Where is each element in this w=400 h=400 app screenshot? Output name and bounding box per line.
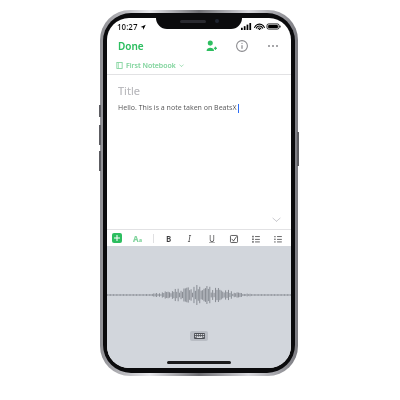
button[interactable]: Hello. This is a note taken on BeatsX [118,103,237,113]
button[interactable]: Show keyboard [190,331,208,341]
button[interactable]: Bulleted list [271,232,284,245]
staticText: U [209,233,215,244]
button[interactable]: Bold [162,232,175,245]
button[interactable]: Share note [202,37,220,55]
staticText: 10:27 [117,21,138,32]
button[interactable]: More options [264,37,282,55]
staticText: B [166,233,172,244]
button[interactable]: Underline [205,232,218,245]
staticText: Done [118,39,144,53]
button[interactable]: Title [118,83,140,98]
button[interactable]: Checklist [227,232,240,245]
button[interactable]: Insert [112,233,122,243]
staticText: A [133,233,139,244]
staticText: I [188,233,191,244]
button[interactable]: First Notebook [107,57,291,74]
button[interactable]: Done [116,36,146,56]
staticText: a [139,237,142,244]
button[interactable]: Note info [233,37,251,55]
button[interactable]: Numbered list [249,232,262,245]
button[interactable]: Text style [131,232,143,244]
staticText: First Notebook [126,61,176,71]
button[interactable]: Italic [183,232,196,245]
button[interactable]: Collapse [269,212,283,226]
